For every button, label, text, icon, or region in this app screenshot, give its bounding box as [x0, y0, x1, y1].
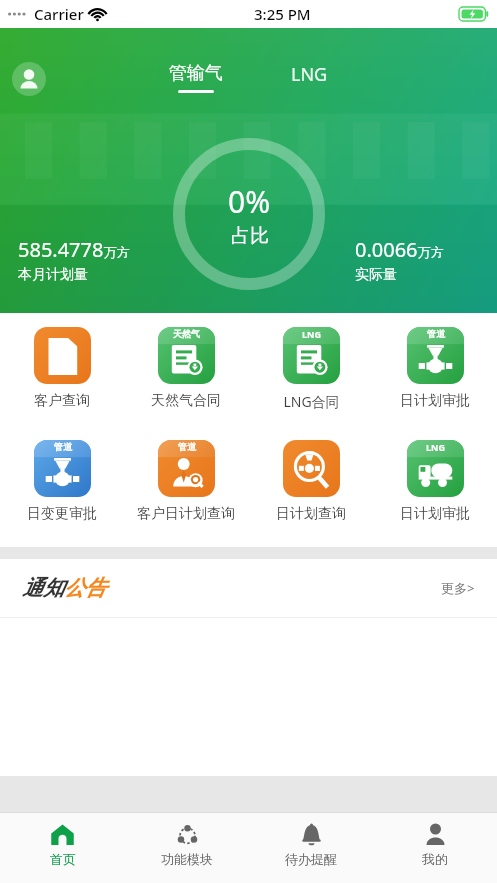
staticText: 天然气合同 [151, 392, 221, 410]
button[interactable]: 我的 [373, 813, 497, 883]
staticText: 3:25 PM [254, 4, 311, 24]
staticText: 日计划查询 [276, 505, 346, 523]
staticText: 客户日计划查询 [137, 505, 235, 523]
staticText: LNG [426, 441, 445, 453]
staticText: 实际量 [355, 266, 397, 284]
staticText: 585.4778万方 [18, 236, 130, 263]
staticText: 管道 [54, 441, 72, 452]
button[interactable]: 管输气 [159, 60, 233, 95]
staticText: 管输气 [169, 62, 223, 85]
staticText: 通知公告 [22, 575, 106, 601]
button[interactable]: 客户查询 [0, 325, 124, 412]
staticText: 客户查询 [34, 392, 90, 410]
button[interactable]: Profile [10, 60, 48, 98]
staticText: 0.0066万方 [355, 236, 444, 263]
button[interactable]: 待办提醒 [249, 813, 373, 883]
button[interactable]: 首页 [0, 813, 125, 883]
button[interactable]: LNG [281, 60, 338, 97]
button[interactable]: 管道 [373, 325, 497, 412]
staticText: 待办提醒 [285, 851, 337, 867]
staticText: LNG合同 [283, 392, 340, 411]
staticText: LNG [302, 328, 321, 340]
staticText: 功能模块 [161, 851, 213, 867]
staticText: LNG [291, 62, 328, 87]
staticText: 日计划审批 [400, 505, 470, 523]
button[interactable]: 通知公告 [0, 559, 497, 617]
button[interactable]: 管道 [124, 438, 248, 525]
staticText: Carrier [34, 4, 84, 24]
staticText: 0% [228, 181, 271, 222]
staticText: 本月计划量 [18, 266, 88, 284]
staticText: 更多> [441, 579, 475, 597]
button[interactable]: LNG [373, 438, 497, 525]
staticText: 管道 [427, 328, 445, 339]
button[interactable]: 天然气 [124, 325, 248, 412]
staticText: 日变更审批 [27, 505, 97, 523]
staticText: 占比 [231, 224, 269, 248]
button[interactable]: LNG [249, 325, 373, 413]
button[interactable]: 管道 [0, 438, 124, 525]
staticText: 我的 [422, 851, 448, 867]
button[interactable]: 功能模块 [125, 813, 249, 883]
staticText: 天然气 [173, 328, 200, 339]
staticText: 管道 [178, 441, 196, 452]
button[interactable]: 日计划查询 [249, 438, 373, 525]
staticText: 日计划审批 [400, 392, 470, 410]
staticText: 首页 [50, 851, 76, 867]
